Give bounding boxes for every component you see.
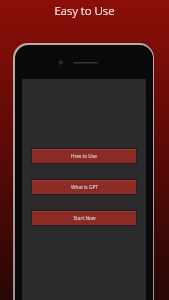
staticText: How to Use bbox=[71, 153, 97, 160]
staticText: Easy to Use bbox=[0, 3, 169, 19]
staticText: What is GPT bbox=[71, 184, 98, 191]
staticText: Start Now bbox=[73, 215, 96, 222]
button[interactable]: Start Now bbox=[31, 210, 137, 226]
button[interactable]: What is GPT bbox=[31, 179, 137, 195]
button[interactable]: How to Use bbox=[31, 148, 137, 164]
